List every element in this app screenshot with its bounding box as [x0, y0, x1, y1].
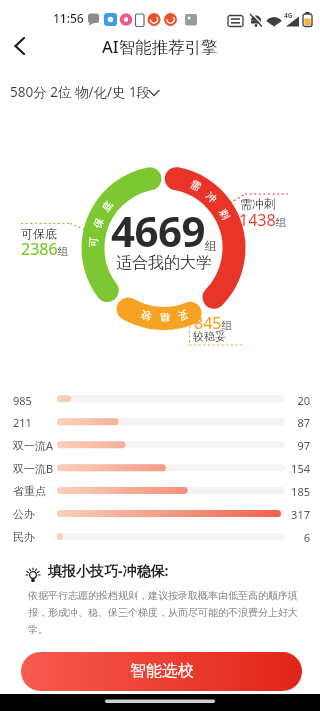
staticText: 87: [250, 415, 310, 430]
staticText: 保: [91, 216, 106, 230]
staticText: 双一流B: [13, 461, 54, 476]
staticText: 智能选校: [130, 661, 194, 681]
staticText: 填报小技巧-冲稳保:: [48, 561, 169, 580]
staticText: 20: [250, 393, 310, 408]
staticText: 2386组: [21, 238, 69, 260]
staticText: 省重点: [13, 484, 46, 498]
staticText: 双一流A: [13, 438, 54, 453]
staticText: 211: [13, 415, 32, 430]
staticText: 985: [13, 393, 32, 408]
staticText: 较: [140, 308, 152, 323]
staticText: 11:56: [53, 10, 84, 26]
staticText: 4G: [284, 11, 293, 20]
staticText: 较稳妥: [193, 329, 226, 343]
staticText: 学。: [28, 623, 48, 636]
staticText: 稳: [160, 311, 170, 324]
staticText: 需: [188, 177, 203, 193]
staticText: 845组: [194, 312, 233, 334]
staticText: 依据平行志愿的投档规则，建议按录取概率由低至高的顺序填: [28, 589, 298, 602]
staticText: 97: [250, 438, 310, 453]
staticText: 刺: [216, 207, 233, 222]
staticText: 需冲刺: [240, 196, 276, 211]
staticText: 580分 2位 物/化/史 1段: [10, 83, 151, 101]
staticText: 报，形成冲、稳、保三个梯度，从而尽可能的不浪费分上好大: [28, 606, 298, 619]
staticText: 公办: [13, 507, 35, 521]
staticText: 妥: [176, 308, 189, 323]
staticText: 154: [250, 461, 310, 476]
staticText: 民办: [13, 530, 35, 544]
staticText: 可保底: [21, 226, 57, 241]
button[interactable]: [0, 0, 320, 66]
staticText: 适合我的大学: [116, 253, 212, 273]
staticText: 底: [99, 198, 116, 214]
staticText: 4669组: [111, 202, 218, 259]
staticText: 6: [250, 530, 310, 545]
staticText: 185: [250, 484, 310, 499]
staticText: AI智能推荐引擎: [102, 35, 218, 58]
button[interactable]: 580分 2位 物/化/史 1段: [10, 83, 165, 101]
staticText: 1438组: [239, 209, 287, 231]
button[interactable]: 智能选校: [21, 652, 302, 691]
staticText: 冲: [203, 189, 220, 205]
staticText: 317: [250, 507, 310, 522]
staticText: 可: [87, 236, 100, 248]
